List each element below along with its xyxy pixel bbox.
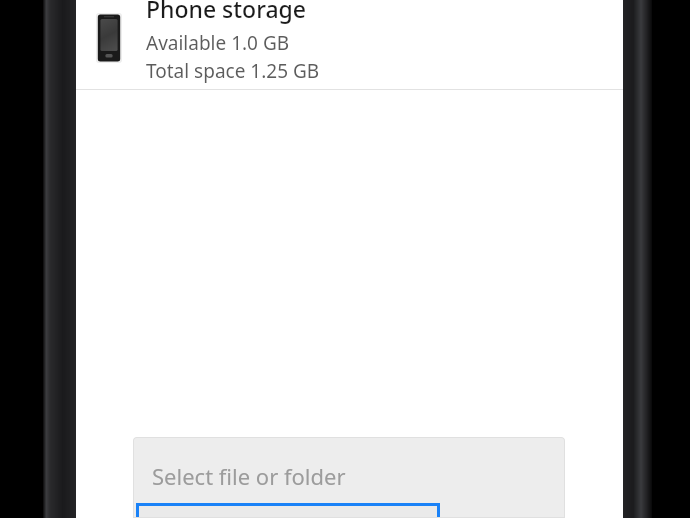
staticText: Available 1.0 GB <box>146 30 290 56</box>
staticText: Select file or folder <box>152 461 346 491</box>
button[interactable]: Phone storage <box>76 0 623 90</box>
button[interactable]: File name input <box>136 503 440 518</box>
staticText: Total space 1.25 GB <box>146 58 320 83</box>
other: Phone storage <box>96 13 122 63</box>
staticText: Phone storage <box>146 0 307 24</box>
